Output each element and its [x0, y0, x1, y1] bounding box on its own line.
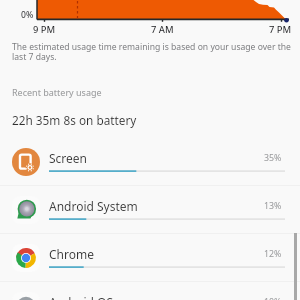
staticText: Screen: [49, 150, 88, 166]
staticText: Recent battery usage: [12, 86, 102, 98]
staticText: 9 PM: [33, 23, 56, 36]
staticText: 12%: [264, 248, 282, 260]
staticText: Android OS: [49, 294, 113, 300]
staticText: 10%: [264, 296, 282, 300]
staticText: 0%: [21, 9, 34, 21]
staticText: Android System: [49, 198, 138, 214]
staticText: 7 AM: [151, 23, 174, 36]
button[interactable]: Chrome: [0, 234, 300, 282]
staticText: Chrome: [49, 246, 94, 262]
staticText: 7 PM: [269, 23, 292, 36]
staticText: 35%: [264, 152, 282, 164]
button[interactable]: Screen: [0, 138, 300, 186]
button[interactable]: Android System: [0, 186, 300, 234]
button[interactable]: Android OS: [0, 282, 300, 300]
staticText: 13%: [264, 200, 282, 212]
staticText: The estimated usage time remaining is ba…: [12, 41, 291, 63]
staticText: 22h 35m 8s on battery: [12, 112, 137, 128]
